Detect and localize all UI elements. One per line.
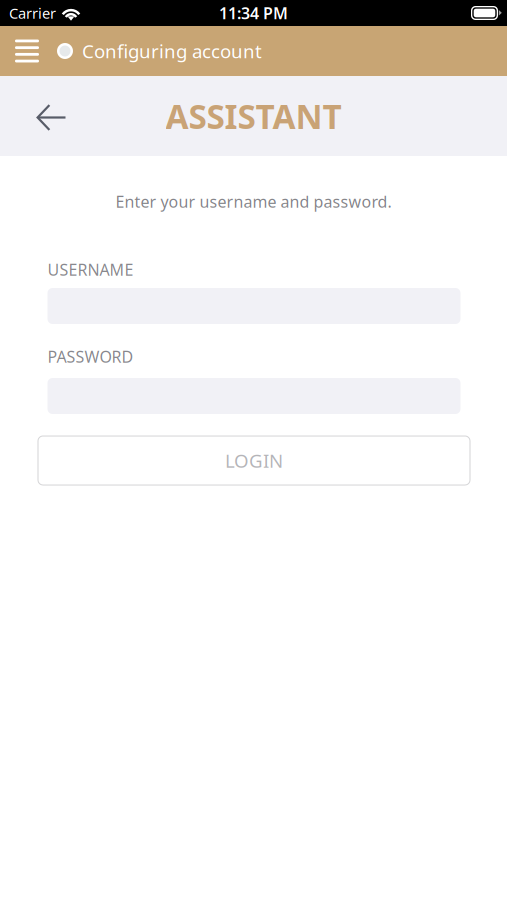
button[interactable]: Menu	[0, 26, 57, 76]
staticText: USERNAME	[47, 259, 133, 280]
staticText: 11:34 PM	[219, 2, 288, 24]
staticText: Configuring account	[82, 39, 262, 63]
button[interactable]: LOGIN	[38, 436, 470, 485]
staticText: PASSWORD	[47, 346, 133, 367]
staticText: LOGIN	[225, 448, 283, 473]
staticText: Enter your username and password.	[115, 191, 391, 212]
staticText: ASSISTANT	[165, 94, 341, 138]
staticText: Carrier	[9, 3, 56, 23]
button[interactable]: Back	[0, 76, 85, 156]
